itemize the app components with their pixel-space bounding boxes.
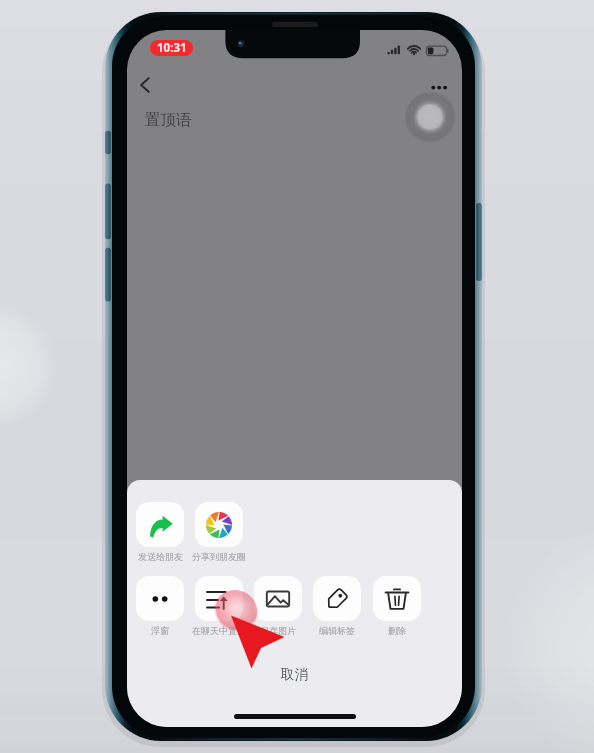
- button[interactable]: 删除: [367, 576, 427, 636]
- button[interactable]: Back: [129, 70, 159, 100]
- staticText: 保存图片: [260, 625, 296, 636]
- button[interactable]: More options: [427, 79, 452, 97]
- button[interactable]: 发送给朋友: [130, 502, 190, 562]
- staticText: 10:31: [157, 40, 187, 56]
- button[interactable]: 分享到朋友圈: [189, 502, 249, 562]
- button[interactable]: 编辑标签: [307, 576, 367, 636]
- staticText: 删除: [388, 625, 406, 636]
- button[interactable]: 在聊天中置顶: [189, 576, 249, 636]
- staticText: 发送给朋友: [138, 551, 183, 562]
- button[interactable]: Record: [404, 91, 458, 145]
- button[interactable]: 浮窗: [130, 576, 190, 636]
- button[interactable]: 取消: [127, 659, 462, 689]
- button[interactable]: 保存图片: [248, 576, 308, 636]
- staticText: 置顶语: [145, 110, 192, 130]
- staticText: 取消: [281, 666, 308, 683]
- staticText: 编辑标签: [319, 625, 355, 636]
- staticText: 在聊天中置顶: [192, 625, 246, 636]
- staticText: 浮窗: [151, 625, 169, 636]
- staticText: 分享到朋友圈: [192, 551, 246, 562]
